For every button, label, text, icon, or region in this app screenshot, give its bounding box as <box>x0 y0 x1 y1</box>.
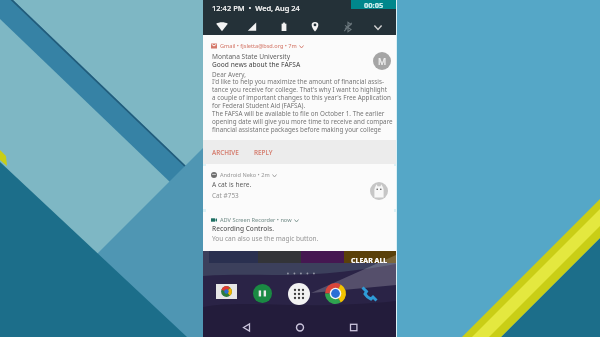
button[interactable]: Chrome <box>325 283 346 304</box>
button[interactable]: Messages <box>253 284 272 303</box>
staticText: 12:42 PM • Wed, Aug 24 <box>212 3 300 13</box>
staticText: REPLY <box>254 148 273 157</box>
button[interactable]: Camera <box>216 284 237 299</box>
button[interactable]: REPLY <box>249 141 283 164</box>
staticText: Good news about the FAFSA <box>212 60 301 69</box>
button[interactable]: ARCHIVE <box>203 141 249 164</box>
staticText: You can also use the magic button. <box>212 234 319 243</box>
staticText: M <box>378 55 387 67</box>
staticText: ARCHIVE <box>212 148 239 157</box>
button[interactable]: Phone <box>359 284 378 303</box>
staticText: Gmail • fjsletta@bsd.org • 7m <box>220 42 297 50</box>
staticText: ADV Screen Recorder • now <box>220 216 292 224</box>
staticText: A cat is here. <box>212 180 252 189</box>
staticText: Cat #753 <box>212 191 239 200</box>
button[interactable]: All apps <box>288 283 310 305</box>
staticText: 00:05 <box>364 0 384 9</box>
staticText: Dear Avery, I'd like to help you maximiz… <box>212 70 393 134</box>
staticText: Android Neko • 2m <box>220 171 270 179</box>
button[interactable]: CLEAR ALL <box>350 255 389 267</box>
staticText: CLEAR ALL <box>351 256 388 266</box>
staticText: Recording Controls. <box>212 224 275 233</box>
staticText: Montana State University <box>212 52 291 61</box>
